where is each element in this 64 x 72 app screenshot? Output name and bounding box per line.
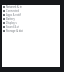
button[interactable]: Sound & vi: [2, 25, 60, 29]
button[interactable]: Connected: [2, 9, 60, 13]
button[interactable]: Battery: [2, 17, 60, 21]
staticText: Storage & dat: [6, 29, 23, 33]
staticText: Battery: [6, 17, 15, 21]
staticText: Connected: [6, 9, 20, 13]
button[interactable]: Storage & dat: [2, 29, 60, 33]
button[interactable]: Network & in: [2, 5, 60, 9]
staticText: Apps & notif: [6, 13, 22, 17]
staticText: Sound & vi: [6, 25, 20, 29]
staticText: Network & in: [6, 5, 22, 9]
button[interactable]: Display s: [2, 21, 60, 25]
staticText: Display s: [6, 21, 17, 25]
button[interactable]: Apps & notif: [2, 13, 60, 17]
